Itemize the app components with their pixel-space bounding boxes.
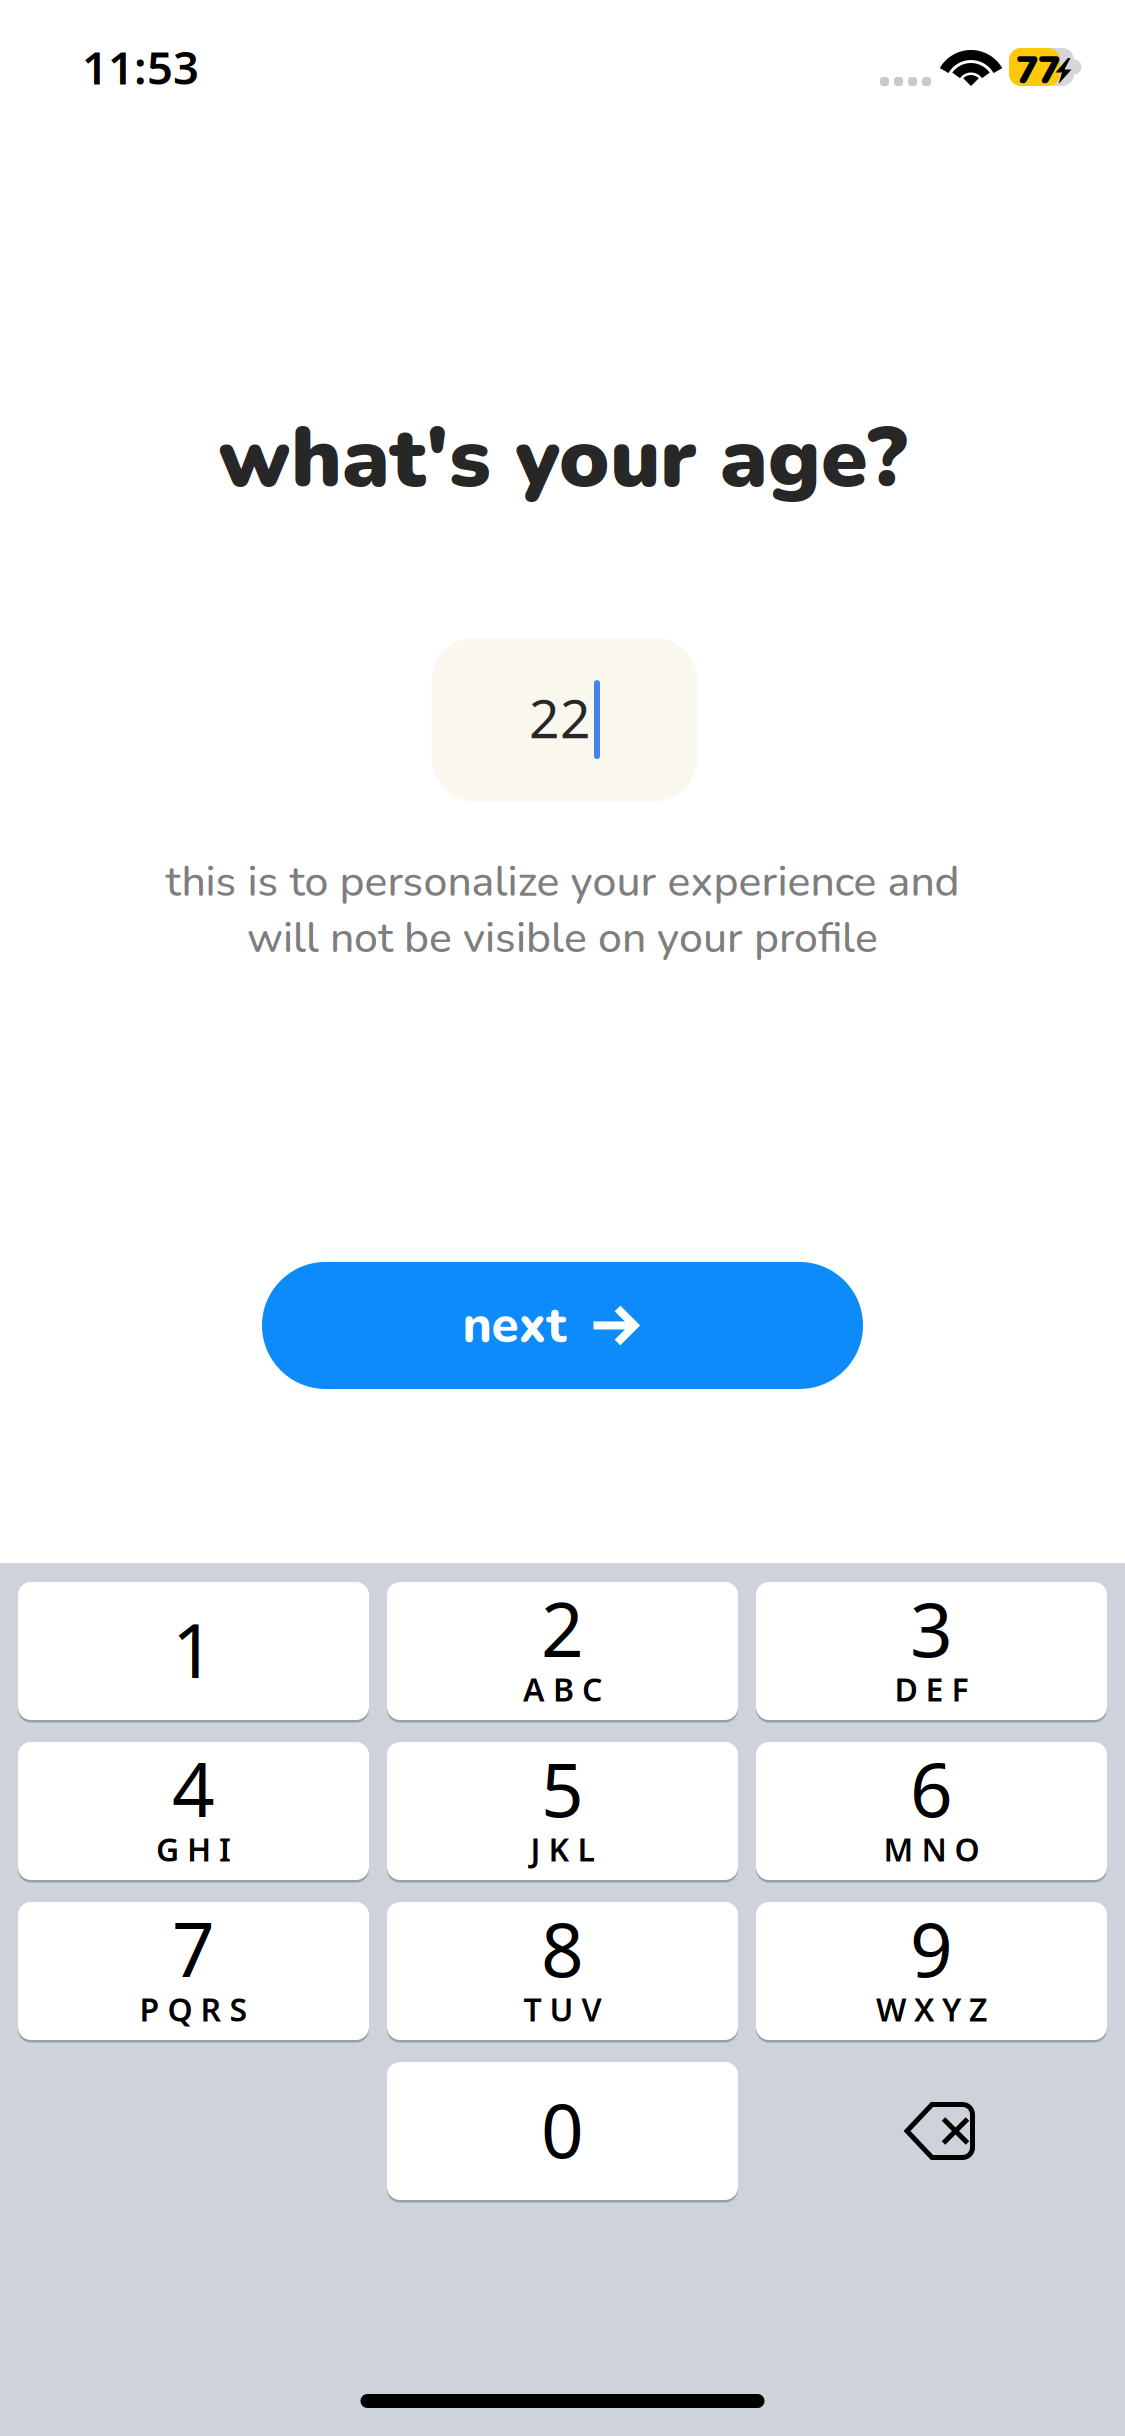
button[interactable]: 8: [387, 1902, 738, 2040]
staticText: 0: [541, 2079, 584, 2179]
staticText: 22: [529, 682, 591, 753]
staticText: 4: [172, 1738, 215, 1838]
staticText: this is to personalize your experience a…: [165, 853, 959, 911]
staticText: 5: [541, 1738, 584, 1838]
staticText: P Q R S: [139, 1988, 247, 2030]
staticText: W X Y Z: [876, 1988, 987, 2030]
staticText: 1: [172, 1599, 215, 1699]
staticText: A B C: [523, 1668, 602, 1710]
staticText: M N O: [883, 1828, 979, 1870]
staticText: G H I: [156, 1828, 231, 1870]
button[interactable]: 3: [756, 1582, 1107, 1720]
button[interactable]: 0: [387, 2062, 738, 2200]
staticText: next: [462, 1292, 566, 1359]
staticText: 11:53: [82, 37, 199, 97]
button[interactable]: 4: [18, 1742, 369, 1880]
button[interactable]: 7: [18, 1902, 369, 2040]
button[interactable]: 2: [387, 1582, 738, 1720]
staticText: will not be visible on your profile: [247, 909, 878, 967]
button[interactable]: next: [262, 1262, 863, 1389]
button[interactable]: 9: [756, 1902, 1107, 2040]
button[interactable]: 5: [387, 1742, 738, 1880]
staticText: T U V: [523, 1988, 601, 2030]
button[interactable]: 6: [756, 1742, 1107, 1880]
staticText: 9: [910, 1898, 953, 1998]
button[interactable]: Age: [431, 638, 697, 802]
staticText: 2: [541, 1578, 584, 1678]
staticText: 7: [172, 1898, 215, 1998]
button[interactable]: Delete: [756, 2062, 1107, 2200]
staticText: 8: [541, 1898, 584, 1998]
staticText: what's your age?: [218, 401, 907, 516]
staticText: D E F: [894, 1668, 968, 1710]
staticText: J K L: [530, 1828, 594, 1870]
button[interactable]: 1: [18, 1582, 369, 1720]
staticText: 77: [1016, 45, 1060, 96]
staticText: 6: [910, 1738, 953, 1838]
staticText: 3: [910, 1578, 953, 1678]
